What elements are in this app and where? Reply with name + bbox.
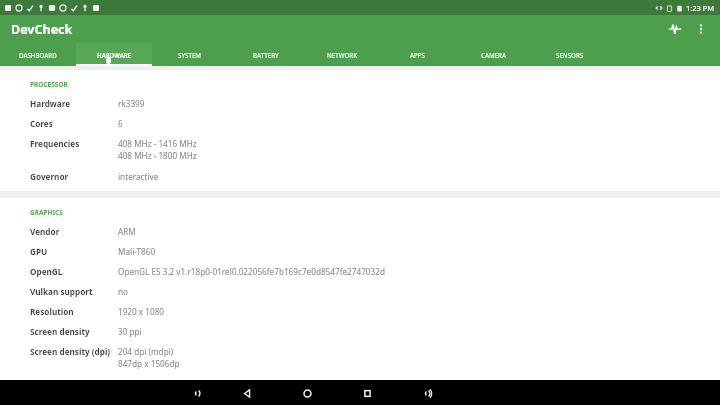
staticText: 1:23 PM [686, 3, 715, 13]
staticText: PROCESSOR [30, 80, 68, 89]
button[interactable]: Screen density [0, 319, 720, 339]
staticText: OpenGL ES 3.2 v1.r18p0-01rel0.022056fe7b… [118, 266, 385, 277]
staticText: DASHBOARD [19, 51, 57, 59]
staticText: APPS [410, 51, 426, 59]
staticText: Screen density (dpi) [30, 346, 111, 357]
button[interactable]: Vendor [0, 219, 720, 239]
button[interactable]: Vulkan support [0, 279, 720, 299]
staticText: Vendor [30, 226, 60, 237]
staticText: GPU [30, 246, 48, 257]
staticText: rk3399 [118, 98, 145, 109]
button[interactable]: HARDWARE [76, 43, 152, 66]
staticText: 1920 x 1080 [118, 306, 165, 317]
button[interactable]: Home [296, 382, 318, 404]
staticText: 847dp x 1506dp [118, 358, 180, 369]
staticText: SYSTEM [178, 51, 202, 59]
staticText: Vulkan support [30, 286, 93, 297]
button[interactable]: APPS [380, 43, 456, 66]
button[interactable]: Recent apps [356, 382, 378, 404]
staticText: 204 dpi (mdpi) [118, 346, 174, 357]
button[interactable]: Frequencies [0, 131, 720, 164]
button[interactable]: Cores [0, 111, 720, 131]
staticText: Resolution [30, 306, 74, 317]
staticText: HARDWARE [97, 51, 132, 59]
staticText: Mali-T860 [118, 246, 156, 257]
button[interactable]: GPU [0, 239, 720, 259]
staticText: 6 [118, 118, 123, 129]
button[interactable]: More options [688, 16, 714, 42]
staticText: Governor [30, 171, 69, 182]
button[interactable]: Hardware [0, 91, 720, 111]
staticText: CAMERA [481, 51, 507, 59]
button[interactable]: Resolution [0, 299, 720, 319]
staticText: SENSORS [556, 51, 584, 59]
button[interactable]: Monitor [662, 16, 688, 42]
staticText: Frequencies [30, 138, 80, 149]
staticText: BATTERY [253, 51, 279, 59]
staticText: NETWORK [327, 51, 358, 59]
button[interactable]: SENSORS [532, 43, 608, 66]
staticText: Screen density [30, 326, 90, 337]
staticText: no [118, 286, 129, 297]
staticText: Hardware [30, 98, 71, 109]
staticText: 30 ppi [118, 326, 142, 337]
staticText: OpenGL [30, 266, 63, 277]
button[interactable]: Screen density (dpi) [0, 339, 720, 372]
button[interactable]: SYSTEM [152, 43, 228, 66]
button[interactable]: DASHBOARD [0, 43, 76, 66]
button[interactable]: NETWORK [304, 43, 380, 66]
staticText: 408 MHz - 1800 MHz [118, 150, 197, 161]
staticText: GRAPHICS [30, 208, 63, 217]
button[interactable]: Governor [0, 164, 720, 184]
staticText: interactive [118, 171, 159, 182]
button[interactable]: Volume down [186, 382, 208, 404]
button[interactable]: Volume up [416, 382, 438, 404]
staticText: DevCheck [11, 21, 73, 38]
button[interactable]: CAMERA [456, 43, 532, 66]
staticText: 408 MHz - 1416 MHz [118, 138, 197, 149]
staticText: Cores [30, 118, 53, 129]
staticText: ARM [118, 226, 136, 237]
button[interactable]: BATTERY [228, 43, 304, 66]
button[interactable]: OpenGL [0, 259, 720, 279]
button[interactable]: Back [236, 382, 258, 404]
